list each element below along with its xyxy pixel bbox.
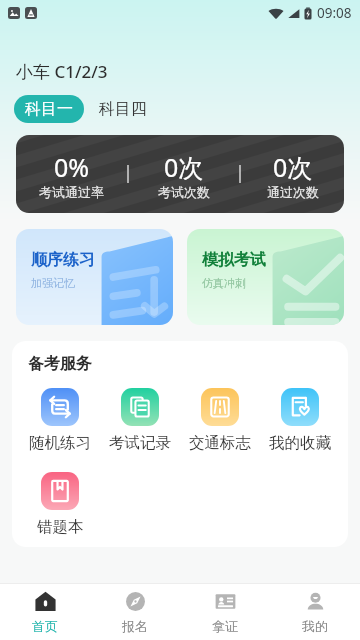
staticText: 考试次数	[158, 184, 210, 200]
staticText: 我的	[302, 618, 328, 634]
staticText: 考试通过率	[39, 184, 104, 200]
button[interactable]: 拿证	[180, 585, 270, 640]
button[interactable]: 错题本	[20, 472, 100, 537]
staticText: 0次	[273, 150, 313, 184]
button[interactable]: 0%	[16, 135, 344, 213]
staticText: 0%	[54, 150, 90, 184]
staticText: 错题本	[37, 517, 84, 537]
staticText: 我的收藏	[269, 433, 331, 453]
button[interactable]: 交通标志	[180, 388, 260, 453]
staticText: 随机练习	[29, 433, 91, 453]
staticText: 考试记录	[109, 433, 171, 453]
staticText: 拿证	[212, 618, 238, 634]
staticText: 首页	[32, 618, 58, 634]
staticText: 通过次数	[267, 184, 319, 200]
button[interactable]: 报名	[90, 585, 180, 640]
button[interactable]: 首页	[0, 585, 90, 640]
staticText: 交通标志	[189, 433, 251, 453]
staticText: 仿真冲刺	[202, 276, 246, 290]
button[interactable]: 科目四	[84, 95, 162, 123]
button[interactable]: 顺序练习	[16, 229, 173, 325]
staticText: 09:08	[317, 4, 352, 22]
button[interactable]: 我的	[270, 585, 360, 640]
staticText: 报名	[122, 618, 148, 634]
staticText: 加强记忆	[31, 276, 75, 290]
staticText: 0次	[164, 150, 204, 184]
button[interactable]: 我的收藏	[260, 388, 340, 453]
button[interactable]: 随机练习	[20, 388, 100, 453]
staticText: 小车 C1/2/3	[16, 60, 108, 83]
staticText: 科目一	[25, 99, 73, 119]
staticText: 模拟考试	[202, 250, 266, 270]
button[interactable]: 考试记录	[100, 388, 180, 453]
staticText: 科目四	[99, 99, 147, 119]
staticText: 备考服务	[28, 354, 92, 374]
button[interactable]: 模拟考试	[187, 229, 344, 325]
staticText: 顺序练习	[31, 250, 95, 270]
button[interactable]: 科目一	[14, 95, 84, 123]
